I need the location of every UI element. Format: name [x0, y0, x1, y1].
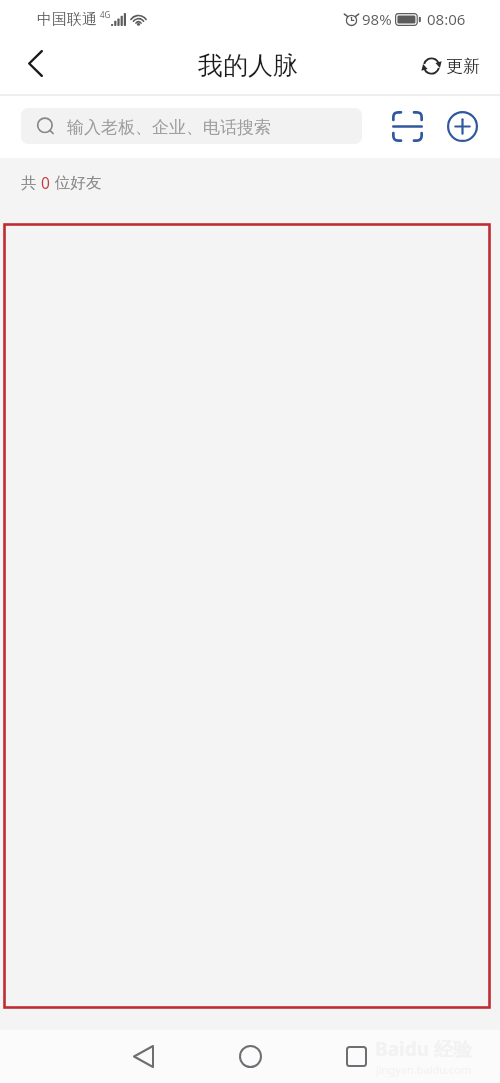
staticText: Baidu 经验 [375, 1036, 472, 1062]
staticText: 中国联通 [37, 10, 97, 29]
button[interactable]: Back [111, 1030, 175, 1083]
button[interactable]: Recent apps [324, 1030, 388, 1083]
staticText: 输入老板、企业、电话搜索 [67, 117, 271, 138]
staticText: 08:06 [427, 9, 466, 29]
staticText: 共 [21, 173, 37, 193]
staticText: 我的人脉 [198, 50, 298, 81]
staticText: 更新 [446, 56, 480, 77]
staticText: 4G [100, 9, 111, 20]
staticText: 98% [362, 9, 392, 29]
staticText: 位好友 [55, 173, 102, 193]
button[interactable]: Scan QR code [385, 104, 429, 148]
button[interactable]: Add contact [440, 104, 484, 148]
staticText: 0 [41, 172, 50, 193]
button[interactable]: 更新 [413, 38, 500, 94]
button[interactable]: 输入老板、企业、电话搜索 [21, 108, 362, 144]
button[interactable]: Back [0, 38, 71, 94]
button[interactable]: Home [218, 1030, 282, 1083]
